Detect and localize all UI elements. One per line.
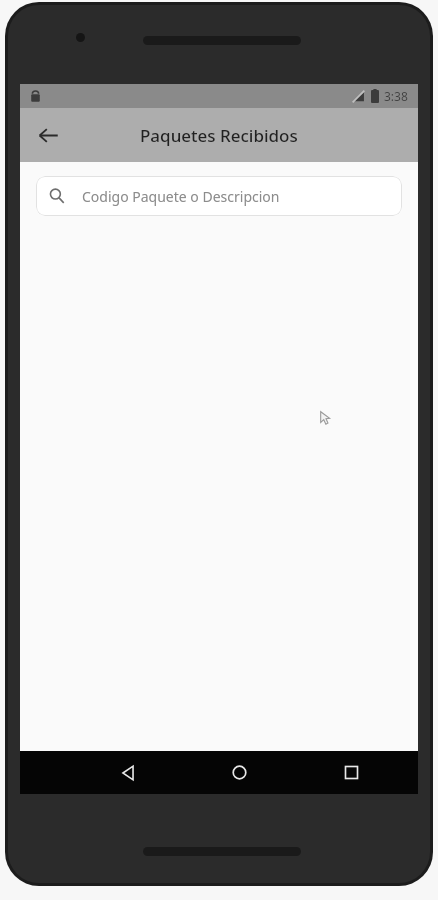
staticText: Codigo Paquete o Descripcion [82,187,280,206]
button[interactable]: Back [88,751,168,794]
button[interactable]: Back [28,115,68,155]
button[interactable]: Recent apps [311,751,391,794]
button[interactable]: Home [199,751,279,794]
button[interactable]: Codigo Paquete o Descripcion [36,176,402,216]
staticText: Paquetes Recibidos [140,124,298,147]
staticText: 3:38 [384,88,408,104]
